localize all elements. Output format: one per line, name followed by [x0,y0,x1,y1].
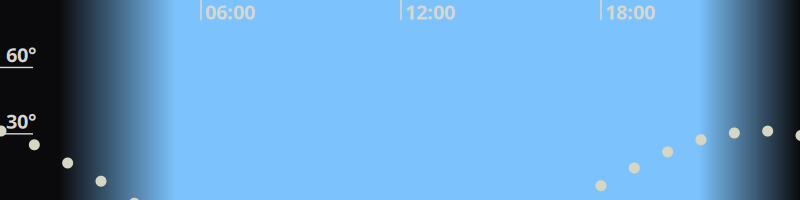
staticText: 18:00 [605,0,655,25]
button[interactable]: Moon altitude chart [0,0,800,200]
staticText: 30° [6,108,36,134]
staticText: 60° [6,41,36,68]
staticText: 12:00 [405,0,455,25]
staticText: 06:00 [205,0,255,25]
